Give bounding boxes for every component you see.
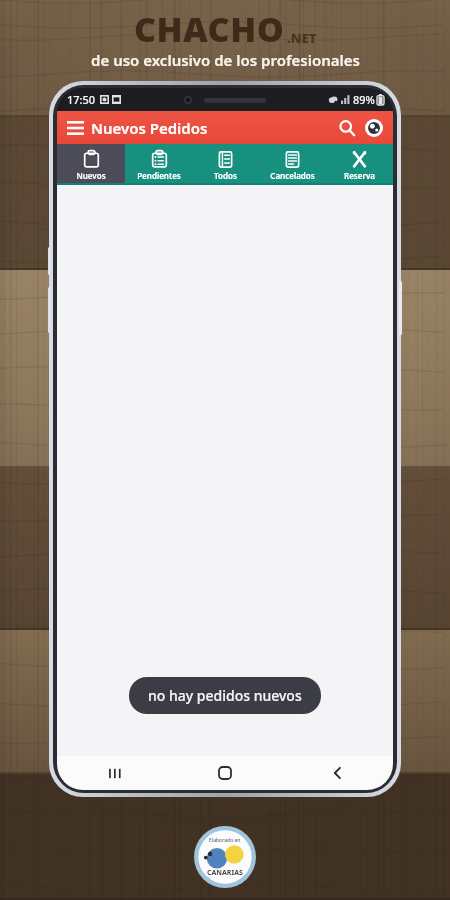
button[interactable]: Home <box>169 756 281 790</box>
button[interactable]: Open navigation menu <box>57 115 91 141</box>
staticText: .NET <box>287 29 317 47</box>
button[interactable]: Search <box>333 114 361 142</box>
staticText: Cancelados <box>270 170 315 181</box>
staticText: de uso exclusivo de los profesionales <box>91 50 360 70</box>
button[interactable]: Pendientes <box>125 144 192 183</box>
staticText: Elaborado en <box>209 837 241 844</box>
button[interactable]: Reserva <box>326 144 393 183</box>
button[interactable]: Todos <box>192 144 259 183</box>
staticText: CANARIAS <box>207 868 243 878</box>
button[interactable]: Language <box>361 114 393 142</box>
button[interactable]: Back <box>281 756 393 790</box>
staticText: Nuevos <box>76 170 106 181</box>
button[interactable]: Cancelados <box>259 144 326 183</box>
staticText: Todos <box>214 170 237 181</box>
staticText: Reserva <box>344 170 375 181</box>
staticText: no hay pedidos nuevos <box>148 686 302 705</box>
button[interactable]: Nuevos <box>57 144 125 183</box>
button[interactable]: Elaborado en Canarias <box>194 826 256 888</box>
staticText: Nuevos Pedidos <box>91 118 208 138</box>
staticText: 17:50 <box>67 92 96 107</box>
staticText: CHACHO <box>134 6 285 52</box>
staticText: Pendientes <box>137 170 181 181</box>
button[interactable]: Recent apps <box>57 756 169 790</box>
staticText: 89% <box>353 92 375 107</box>
